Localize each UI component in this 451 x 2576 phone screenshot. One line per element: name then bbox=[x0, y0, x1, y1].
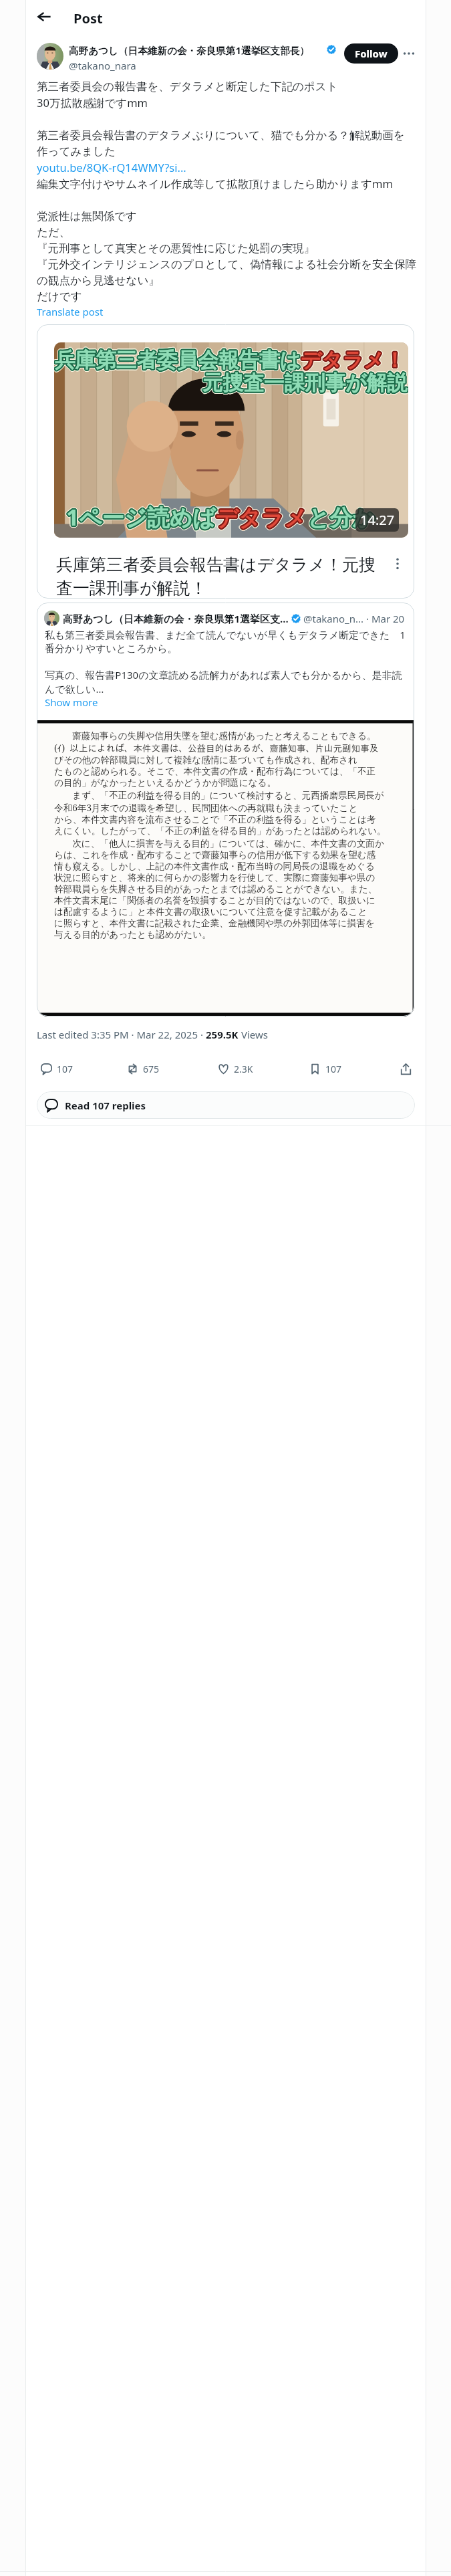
staticText: 兵庫第三者委員会報告書はデタラメ！ bbox=[54, 348, 404, 374]
staticText: 兵庫第三者委員会報告書はデタラメ！ bbox=[55, 346, 406, 372]
staticText: 元捜査一課刑事が解説 bbox=[201, 371, 406, 397]
staticText: 元捜査一課刑事が解説 bbox=[202, 370, 407, 396]
staticText: @takano_nara bbox=[69, 59, 136, 72]
staticText: 私も第三者委員会報告書、まだ全て読んでないが早くもデタラメ断定できた 1 番分か… bbox=[45, 628, 406, 668]
staticText: 元捜査一課刑事が解説 bbox=[202, 372, 408, 398]
staticText: 兵庫第三者委員会報告書はデタラメ！ bbox=[55, 346, 405, 372]
staticText: 1ページ読めばデタラメと分か bbox=[65, 502, 374, 533]
staticText: 兵庫第三者委員会報告書はデタラメ！ bbox=[56, 348, 406, 374]
staticText: 元捜査一課刑事が解説 bbox=[203, 372, 408, 398]
staticText: 元捜査一課刑事が解説 bbox=[204, 369, 408, 395]
staticText: は配慮するように」と本件文書の取扱いについて注意を促す記載があること bbox=[54, 906, 367, 918]
staticText: 1ページ読めばデタラメと分か bbox=[67, 503, 377, 534]
staticText: 兵庫第三者委員会報告書はデタラメ！ bbox=[55, 346, 406, 372]
staticText: 1ページ読めばデタラメと分か bbox=[66, 500, 375, 530]
staticText: 兵庫第三者委員会報告書はデタラメ！ bbox=[54, 349, 404, 375]
staticText: 兵庫第三者委員会報告書はデタラメ！ bbox=[55, 349, 406, 375]
staticText: 兵庫第三者委員会報告書はデタラメ！ bbox=[55, 346, 406, 372]
staticText: 兵庫第三者委員会報告書はデタラメ！ bbox=[55, 348, 406, 374]
staticText: 兵庫第三者委員会報告書はデタラメ！元捜査一課刑事が解説！ bbox=[56, 554, 385, 599]
staticText: 元捜査一課刑事が解説 bbox=[202, 372, 407, 399]
staticText: の目的」がなかったといえるかどうかが問題になる。 bbox=[54, 777, 276, 788]
staticText: 107 bbox=[57, 1063, 73, 1075]
staticText: 1ページ読めばデタラメと分か bbox=[65, 501, 374, 532]
staticText: 元捜査一課刑事が解説 bbox=[204, 371, 408, 397]
staticText: 元捜査一課刑事が解説 bbox=[204, 370, 408, 397]
staticText: 兵庫第三者委員会報告書はデタラメ！ bbox=[54, 346, 404, 372]
staticText: びその他の幹部職員に対して複雑な感情に基づいても作成され、配布され bbox=[54, 754, 358, 766]
staticText: 兵庫第三者委員会報告書はデタラメ！ bbox=[55, 349, 405, 375]
staticText: 675 bbox=[143, 1063, 160, 1075]
staticText: 兵庫第三者委員会報告書はデタラメ！ bbox=[54, 347, 404, 373]
staticText: 1ページ読めばデタラメと分か bbox=[65, 503, 375, 534]
staticText: 元捜査一課刑事が解説 bbox=[202, 368, 407, 395]
staticText: 1ページ読めばデタラメと分か bbox=[67, 501, 377, 532]
staticText: 状況に照らすと、将来的に何らかの影響力を行使して、実際に齋藤知事や県の bbox=[54, 872, 375, 883]
staticText: 高野あつし（日本維新の会・奈良県第1選挙区支... bbox=[63, 612, 289, 625]
staticText: 元捜査一課刑事が解説 bbox=[203, 372, 408, 398]
staticText: 1ページ読めばデタラメと分か bbox=[67, 502, 377, 533]
staticText: 1ページ読めばデタラメと分か bbox=[65, 503, 374, 534]
staticText: 1ページ読めばデタラメと分か bbox=[67, 503, 376, 534]
button[interactable]: More options bbox=[398, 43, 420, 64]
staticText: 1ページ読めばデタラメと分か bbox=[65, 501, 374, 532]
staticText: 1ページ読めばデタラメと分か bbox=[65, 504, 375, 534]
staticText: 本件文書末尾に「関係者の名誉を毀損することが目的ではないので、取扱いに bbox=[54, 895, 375, 906]
staticText: 元捜査一課刑事が解説 bbox=[201, 369, 406, 395]
button[interactable]: 675 bbox=[122, 1062, 165, 1075]
staticText: 元捜査一課刑事が解説 bbox=[202, 369, 407, 395]
button[interactable]: 107 bbox=[35, 1062, 79, 1075]
staticText: えにくい。したがって、「不正の利益を得る目的」があったとは認められない。 bbox=[54, 825, 386, 837]
button[interactable]: 107 bbox=[304, 1062, 347, 1075]
staticText: 元捜査一課刑事が解説 bbox=[203, 371, 408, 397]
button[interactable]: 高野あつし（日本維新の会・奈良県第1選挙区支... bbox=[37, 603, 414, 1016]
staticText: 兵庫第三者委員会報告書はデタラメ！ bbox=[54, 348, 404, 374]
staticText: 14:27 bbox=[360, 511, 395, 529]
staticText: 元捜査一課刑事が解説 bbox=[204, 371, 408, 397]
staticText: 1ページ読めばデタラメと分か bbox=[66, 501, 375, 532]
staticText: 1ページ読めばデタラメと分か bbox=[65, 501, 375, 532]
button[interactable]: Show more bbox=[45, 695, 98, 709]
staticText: 1ページ読めばデタラメと分か bbox=[65, 502, 375, 533]
button[interactable]: More bbox=[388, 554, 408, 574]
staticText: 1ページ読めばデタラメと分か bbox=[65, 502, 375, 532]
staticText: 兵庫第三者委員会報告書はデタラメ！ bbox=[54, 346, 404, 372]
button[interactable]: Share bbox=[394, 1062, 417, 1075]
staticText: 元捜査一課刑事が解説 bbox=[204, 370, 408, 397]
staticText: 1ページ読めばデタラメと分か bbox=[66, 502, 375, 532]
staticText: 1ページ読めばデタラメと分か bbox=[67, 504, 376, 534]
staticText: 1ページ読めばデタラメと分か bbox=[64, 502, 373, 533]
staticText: 兵庫第三者委員会報告書はデタラメ！ bbox=[56, 347, 406, 373]
staticText: 1ページ読めばデタラメと分か bbox=[67, 500, 376, 530]
button[interactable]: Read 107 replies bbox=[37, 1091, 415, 1119]
button[interactable]: Back bbox=[32, 5, 56, 29]
staticText: 与える目的があったとも認めがたい。 bbox=[54, 929, 211, 940]
staticText: 写真の、報告書P130の文章読める読解力があれば素人でも分かるから、是非読 んで… bbox=[45, 668, 402, 695]
staticText: 元捜査一課刑事が解説 bbox=[202, 370, 408, 397]
staticText: 兵庫第三者委員会報告書はデタラメ！ bbox=[54, 349, 404, 375]
staticText: 元捜査一課刑事が解説 bbox=[200, 370, 406, 397]
staticText: 兵庫第三者委員会報告書はデタラメ！ bbox=[55, 348, 405, 374]
staticText: 兵庫第三者委員会報告書はデタラメ！ bbox=[55, 348, 406, 374]
staticText: 元捜査一課刑事が解説 bbox=[202, 372, 407, 398]
staticText: Read 107 replies bbox=[65, 1099, 146, 1112]
staticText: 元捜査一課刑事が解説 bbox=[201, 370, 406, 396]
button[interactable]: 2.3K bbox=[212, 1062, 259, 1075]
staticText: 1ページ読めばデタラメと分か bbox=[67, 502, 377, 533]
button[interactable]: 兵庫第三者委員会報告書はデタラメ！ bbox=[37, 324, 414, 599]
staticText: 元捜査一課刑事が解説 bbox=[204, 371, 408, 397]
button[interactable]: Follow bbox=[344, 43, 398, 64]
staticText: 1ページ読めばデタラメと分か bbox=[67, 501, 376, 532]
staticText: 元捜査一課刑事が解説 bbox=[201, 372, 406, 398]
staticText: 兵庫第三者委員会報告書はデタラメ！ bbox=[54, 347, 403, 373]
staticText: 兵庫第三者委員会報告書はデタラメ！ bbox=[57, 347, 407, 373]
staticText: 元捜査一課刑事が解説 bbox=[203, 372, 408, 399]
staticText: @takano_n... · Mar 20 bbox=[303, 612, 405, 625]
button[interactable]: Translate post bbox=[37, 305, 104, 318]
staticText: 107 bbox=[325, 1063, 342, 1075]
staticText: Show more bbox=[45, 695, 98, 709]
staticText: 兵庫第三者委員会報告書はデタラメ！ bbox=[54, 349, 404, 375]
staticText: 元捜査一課刑事が解説 bbox=[203, 370, 408, 397]
staticText: 兵庫第三者委員会報告書はデタラメ！ bbox=[54, 348, 404, 374]
staticText: 兵庫第三者委員会報告書はデタラメ！ bbox=[57, 348, 407, 374]
